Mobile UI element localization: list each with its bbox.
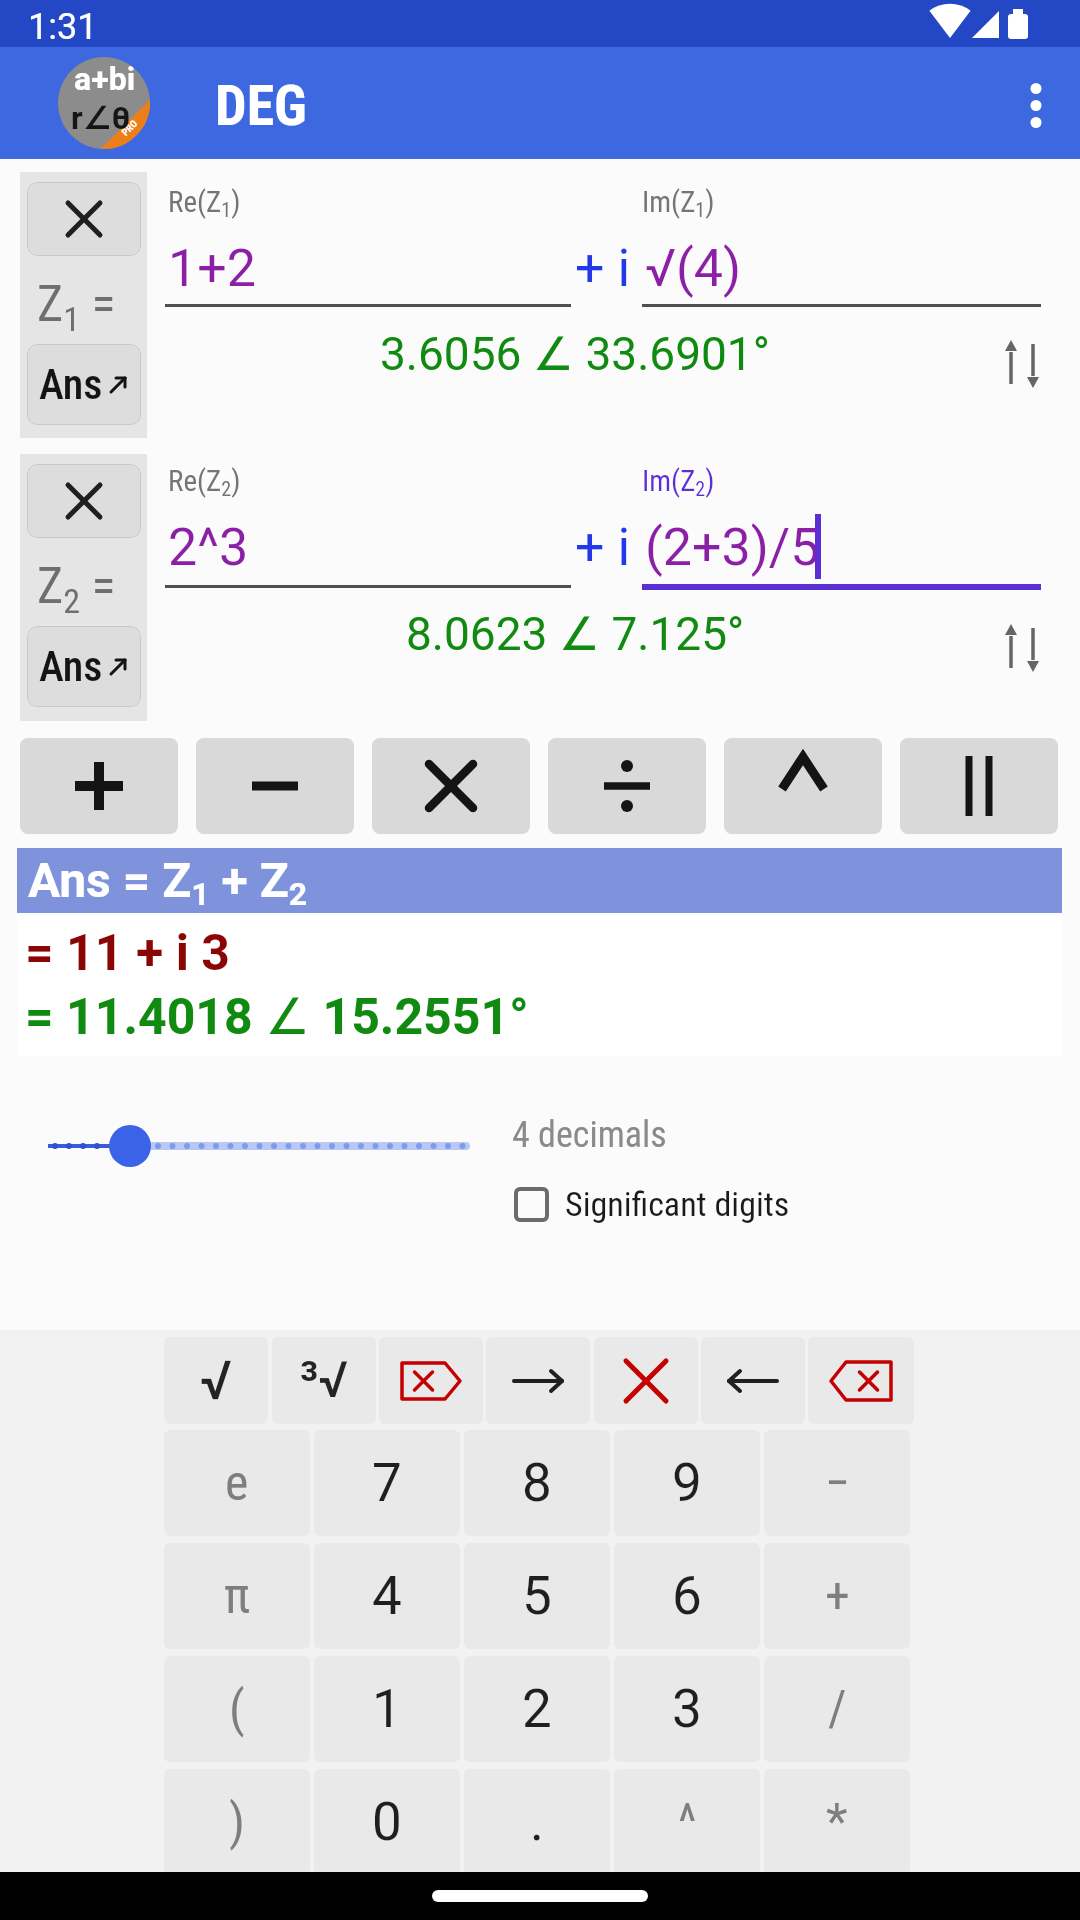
button[interactable] (548, 738, 706, 834)
staticText: Im(Z2) (642, 464, 715, 501)
button[interactable] (196, 738, 354, 834)
staticText: DEG (215, 73, 307, 139)
button[interactable] (20, 738, 178, 834)
staticText: Ans (39, 360, 103, 409)
staticText: ) (229, 1793, 245, 1852)
button[interactable] (808, 1337, 914, 1424)
staticText: r∠θ (71, 99, 131, 137)
staticText: 3.6056 ∠ 33.6901° (380, 327, 770, 381)
staticText: + i (575, 517, 631, 578)
button[interactable]: √ (164, 1337, 268, 1424)
staticText: π (224, 1567, 251, 1626)
button[interactable]: / (764, 1656, 910, 1762)
staticText: PRO (119, 117, 141, 139)
staticText: = 11.4018 ∠ 15.2551° (25, 988, 529, 1047)
button[interactable]: 9 (614, 1430, 760, 1536)
button[interactable]: * (764, 1769, 910, 1875)
staticText: Significant digits (565, 1184, 790, 1224)
button[interactable] (27, 464, 141, 538)
button[interactable] (701, 1337, 805, 1424)
button[interactable]: 3 (614, 1656, 760, 1762)
staticText: 1 (372, 1678, 402, 1740)
button[interactable] (1016, 83, 1056, 128)
staticText: 8.0623 ∠ 7.125° (406, 607, 745, 661)
button[interactable]: 7 (314, 1430, 460, 1536)
button[interactable]: e (164, 1430, 310, 1536)
button[interactable]: π (164, 1543, 310, 1649)
button[interactable]: 0 (314, 1769, 460, 1875)
staticText: Re(Z1) (168, 185, 241, 222)
staticText: Z1 = (37, 275, 116, 339)
staticText: √(4) (645, 238, 742, 299)
staticText: 0 (372, 1791, 402, 1853)
button[interactable]: ^ (614, 1769, 760, 1875)
button[interactable]: 6 (614, 1543, 760, 1649)
staticText: + (825, 1567, 850, 1626)
button[interactable] (486, 1337, 590, 1424)
staticText: 7 (372, 1452, 402, 1514)
staticText: a+bi (74, 60, 136, 98)
staticText: 2 (522, 1678, 552, 1740)
button[interactable] (1002, 340, 1042, 388)
button[interactable]: + (764, 1543, 910, 1649)
button[interactable] (724, 738, 882, 834)
button[interactable] (379, 1337, 483, 1424)
button[interactable]: Significant digits (514, 1184, 790, 1224)
staticText: 3 (672, 1678, 702, 1740)
button[interactable] (27, 182, 141, 256)
staticText: . (530, 1791, 544, 1853)
staticText: 9 (672, 1452, 702, 1514)
button[interactable]: − (764, 1430, 910, 1536)
staticText: Ans = Z1 + Z2 (28, 852, 308, 913)
button[interactable]: 4 (314, 1543, 460, 1649)
button[interactable]: ( (164, 1656, 310, 1762)
staticText: 1:31 (28, 6, 98, 48)
staticText: Re(Z2) (168, 464, 241, 501)
button[interactable]: ³√ (272, 1337, 376, 1424)
staticText: + i (575, 238, 631, 299)
staticText: (2+3)/5 (645, 517, 820, 578)
staticText: Ans (39, 642, 103, 691)
button[interactable]: 8 (464, 1430, 610, 1536)
staticText: − (825, 1454, 850, 1513)
staticText: 2^3 (168, 517, 249, 578)
button[interactable] (48, 1124, 470, 1168)
button[interactable]: . (464, 1769, 610, 1875)
staticText: Im(Z1) (642, 185, 715, 222)
staticText: 4 (372, 1565, 402, 1627)
staticText: 4 decimals (512, 1114, 667, 1156)
button[interactable] (594, 1337, 698, 1424)
button[interactable]: ) (164, 1769, 310, 1875)
staticText: / (828, 1680, 847, 1739)
staticText: √ (200, 1349, 232, 1412)
staticText: Z2 = (37, 557, 116, 621)
staticText: ( (229, 1680, 245, 1739)
staticText: ^ (678, 1793, 697, 1852)
staticText: 6 (672, 1565, 702, 1627)
button[interactable] (1002, 624, 1042, 672)
button[interactable]: 2 (464, 1656, 610, 1762)
button[interactable] (900, 738, 1058, 834)
button[interactable]: 1 (314, 1656, 460, 1762)
staticText: 1+2 (168, 238, 256, 299)
staticText: = 11 + i 3 (25, 924, 231, 983)
button[interactable]: Ans (27, 344, 141, 425)
staticText: e (225, 1454, 249, 1513)
staticText: ³√ (300, 1351, 348, 1410)
button[interactable]: Ans (27, 626, 141, 707)
staticText: 8 (522, 1452, 552, 1514)
button[interactable]: 5 (464, 1543, 610, 1649)
staticText: 5 (522, 1565, 552, 1627)
button[interactable] (372, 738, 530, 834)
staticText: * (826, 1793, 848, 1852)
